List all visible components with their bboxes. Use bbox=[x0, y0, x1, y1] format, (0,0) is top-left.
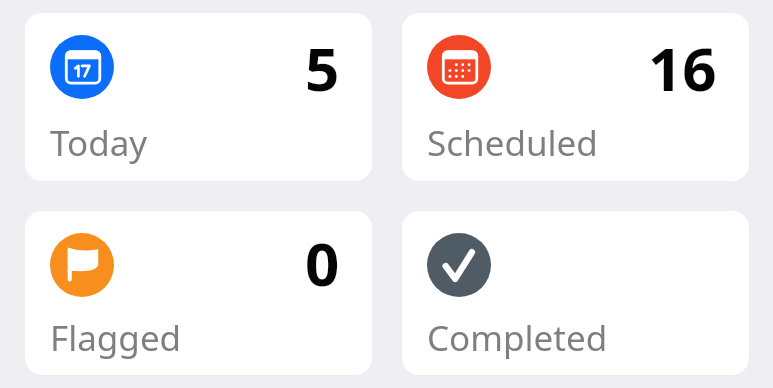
button[interactable]: Flagged bbox=[25, 211, 372, 375]
staticText: Today bbox=[50, 119, 148, 167]
other: Flagged bbox=[50, 233, 114, 297]
staticText: Scheduled bbox=[427, 119, 598, 167]
staticText: 5 bbox=[305, 27, 340, 109]
button[interactable]: Completed bbox=[402, 211, 749, 375]
other: Today bbox=[50, 35, 114, 99]
other: Scheduled bbox=[427, 35, 491, 99]
staticText: 16 bbox=[648, 27, 717, 109]
staticText: Flagged bbox=[50, 314, 182, 362]
button[interactable]: Scheduled bbox=[402, 13, 749, 181]
other: Completed bbox=[427, 233, 491, 297]
staticText: 0 bbox=[305, 222, 340, 304]
button[interactable]: Today bbox=[25, 13, 372, 181]
staticText: Completed bbox=[427, 314, 608, 362]
